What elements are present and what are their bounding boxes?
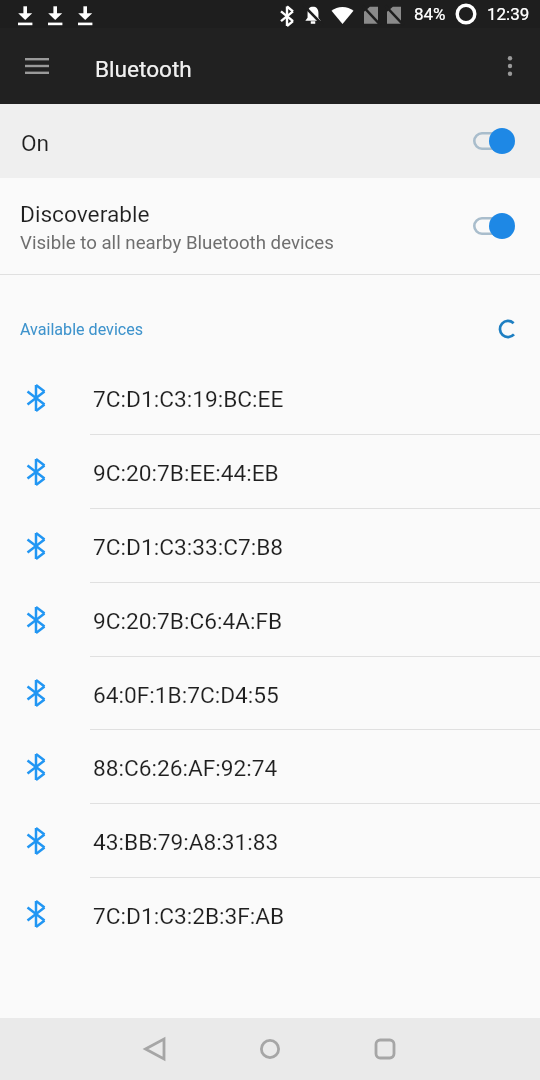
button[interactable]: Recent apps bbox=[355, 1019, 415, 1079]
staticText: 12:39 bbox=[487, 4, 530, 24]
button[interactable]: Back bbox=[125, 1019, 185, 1079]
staticText: 9C:20:7B:C6:4A:FB bbox=[93, 608, 283, 635]
staticText: 84% bbox=[414, 4, 446, 24]
button[interactable]: 43:BB:79:A8:31:83 bbox=[0, 804, 540, 877]
button[interactable]: Refresh bbox=[488, 309, 528, 349]
button[interactable]: Discoverable bbox=[0, 178, 540, 274]
staticText: 7C:D1:C3:2B:3F:AB bbox=[93, 903, 285, 930]
staticText: 88:C6:26:AF:92:74 bbox=[93, 755, 278, 782]
button[interactable]: More options bbox=[486, 42, 534, 90]
button[interactable]: Navigation menu bbox=[13, 42, 61, 90]
button[interactable]: On bbox=[0, 104, 540, 178]
button[interactable]: 88:C6:26:AF:92:74 bbox=[0, 730, 540, 803]
button[interactable]: 64:0F:1B:7C:D4:55 bbox=[0, 657, 540, 729]
staticText: On bbox=[21, 130, 50, 157]
staticText: 43:BB:79:A8:31:83 bbox=[93, 829, 279, 856]
staticText: Available devices bbox=[20, 320, 144, 339]
button[interactable]: 7C:D1:C3:19:BC:EE bbox=[0, 361, 540, 434]
button[interactable]: 9C:20:7B:C6:4A:FB bbox=[0, 583, 540, 656]
button[interactable]: Home bbox=[240, 1019, 300, 1079]
staticText: Discoverable bbox=[20, 201, 150, 228]
button[interactable]: 9C:20:7B:EE:44:EB bbox=[0, 435, 540, 508]
button[interactable]: 7C:D1:C3:33:C7:B8 bbox=[0, 509, 540, 582]
staticText: Bluetooth bbox=[95, 56, 192, 82]
staticText: Visible to all nearby Bluetooth devices bbox=[20, 232, 334, 254]
staticText: 7C:D1:C3:33:C7:B8 bbox=[93, 534, 284, 561]
button[interactable]: 7C:D1:C3:2B:3F:AB bbox=[0, 878, 540, 950]
staticText: 7C:D1:C3:19:BC:EE bbox=[93, 386, 284, 413]
staticText: 64:0F:1B:7C:D4:55 bbox=[93, 682, 279, 709]
staticText: 9C:20:7B:EE:44:EB bbox=[93, 460, 279, 487]
